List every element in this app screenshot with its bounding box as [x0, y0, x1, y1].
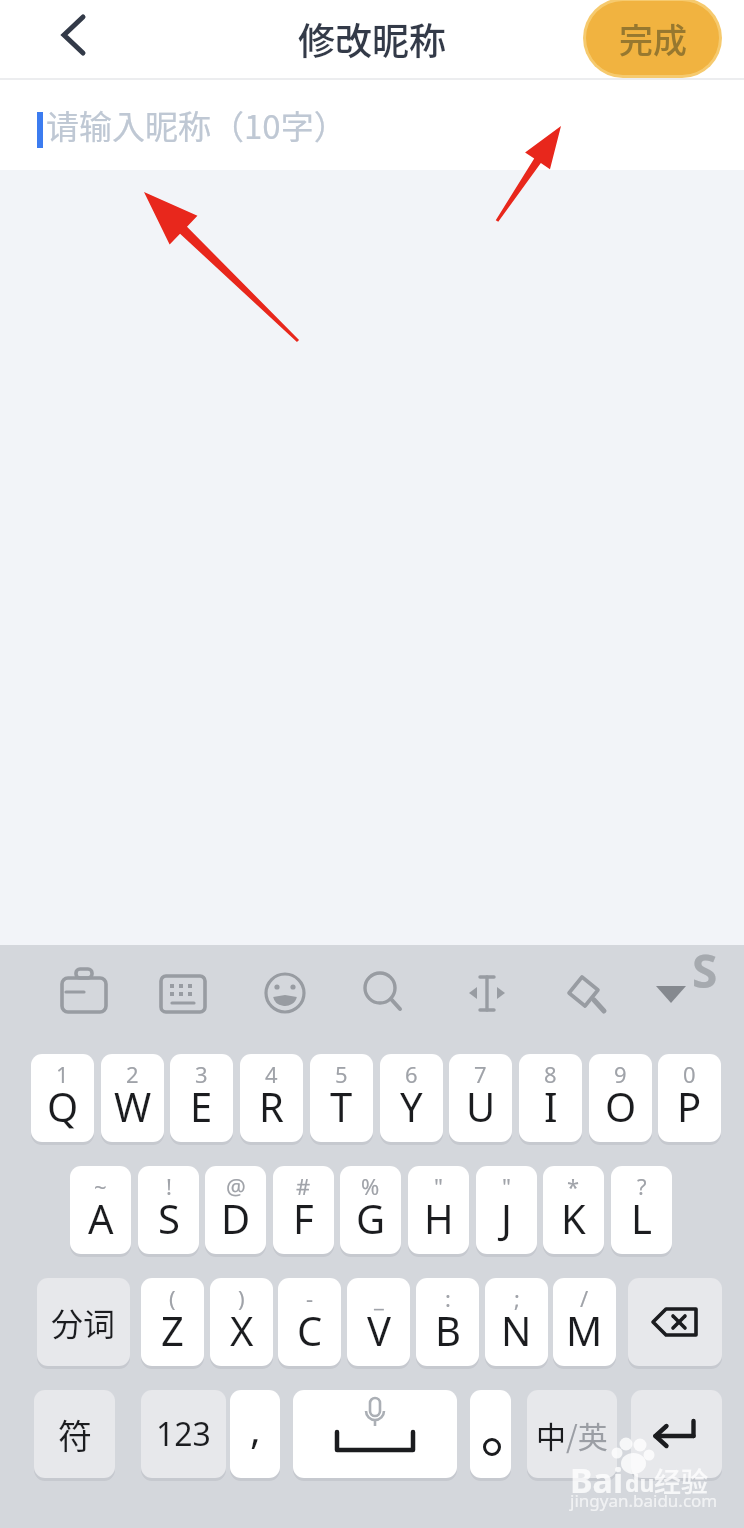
- staticText: du: [625, 1467, 655, 1498]
- staticText: 经验: [654, 1461, 708, 1500]
- staticText: M: [566, 1303, 603, 1357]
- button[interactable]: 0: [658, 1054, 721, 1142]
- staticText: Z: [161, 1303, 184, 1357]
- button[interactable]: [631, 1390, 722, 1478]
- staticText: @: [226, 1171, 246, 1201]
- button[interactable]: 2: [101, 1054, 164, 1142]
- button[interactable]: 符: [34, 1390, 115, 1478]
- staticText: X: [230, 1303, 254, 1357]
- staticText: Q: [47, 1079, 79, 1133]
- button[interactable]: #: [273, 1166, 334, 1254]
- button[interactable]: 完成: [583, 0, 722, 78]
- staticText: #: [296, 1171, 311, 1201]
- button[interactable]: [255, 963, 315, 1023]
- staticText: 4: [265, 1059, 278, 1089]
- staticText: B: [435, 1303, 461, 1357]
- button[interactable]: (: [141, 1278, 204, 1366]
- button[interactable]: [54, 963, 114, 1023]
- staticText: J: [501, 1191, 512, 1245]
- staticText: :: [445, 1283, 451, 1313]
- staticText: ?: [637, 1171, 647, 1201]
- staticText: O: [605, 1079, 637, 1133]
- staticText: G: [356, 1191, 386, 1245]
- button[interactable]: %: [340, 1166, 401, 1254]
- staticText: Bai: [570, 1457, 624, 1503]
- staticText: R: [259, 1079, 284, 1133]
- button[interactable]: :: [416, 1278, 479, 1366]
- button[interactable]: 3: [170, 1054, 233, 1142]
- button[interactable]: ): [210, 1278, 273, 1366]
- staticText: U: [466, 1079, 496, 1133]
- staticText: _: [374, 1283, 384, 1313]
- button[interactable]: 7: [449, 1054, 512, 1142]
- button[interactable]: ;: [485, 1278, 548, 1366]
- staticText: %: [361, 1171, 380, 1201]
- button[interactable]: [40, 5, 104, 71]
- staticText: S: [692, 939, 718, 1002]
- staticText: 完成: [619, 14, 687, 63]
- staticText: N: [501, 1303, 532, 1357]
- button[interactable]: /: [553, 1278, 616, 1366]
- staticText: D: [221, 1191, 251, 1245]
- staticText: 1: [56, 1059, 69, 1089]
- staticText: -: [306, 1283, 314, 1313]
- staticText: 符: [58, 1410, 92, 1459]
- staticText: H: [424, 1191, 454, 1245]
- button[interactable]: ": [408, 1166, 469, 1254]
- button[interactable]: 请输入昵称（10字）: [0, 80, 744, 170]
- button[interactable]: ?: [611, 1166, 672, 1254]
- staticText: jingyan.baidu.com: [570, 1489, 718, 1512]
- button[interactable]: ~: [70, 1166, 131, 1254]
- staticText: I: [544, 1079, 558, 1133]
- button[interactable]: [293, 1390, 457, 1478]
- staticText: K: [561, 1191, 586, 1245]
- button[interactable]: 中: [527, 1390, 617, 1478]
- button[interactable]: [628, 1278, 722, 1366]
- staticText: *: [567, 1171, 580, 1201]
- staticText: E: [190, 1079, 213, 1133]
- staticText: Y: [400, 1079, 423, 1133]
- staticText: 5: [335, 1059, 348, 1089]
- staticText: ;: [514, 1283, 520, 1313]
- staticText: 修改昵称: [298, 12, 446, 66]
- button[interactable]: [556, 963, 616, 1023]
- button[interactable]: ": [476, 1166, 537, 1254]
- staticText: ~: [94, 1171, 107, 1201]
- button[interactable]: [352, 963, 412, 1023]
- button[interactable]: *: [543, 1166, 604, 1254]
- staticText: 请输入昵称（10字）: [46, 101, 347, 149]
- button[interactable]: [641, 963, 701, 1023]
- button[interactable]: 分词: [37, 1278, 130, 1366]
- button[interactable]: !: [138, 1166, 199, 1254]
- staticText: W: [114, 1079, 152, 1133]
- staticText: 9: [614, 1059, 627, 1089]
- staticText: A: [88, 1191, 114, 1245]
- button[interactable]: _: [347, 1278, 410, 1366]
- staticText: ": [502, 1171, 511, 1201]
- button[interactable]: 4: [240, 1054, 303, 1142]
- button[interactable]: [153, 963, 213, 1023]
- staticText: /: [580, 1283, 589, 1313]
- staticText: P: [677, 1079, 702, 1133]
- button[interactable]: [457, 963, 517, 1023]
- staticText: V: [367, 1303, 391, 1357]
- button[interactable]: 123: [141, 1390, 226, 1478]
- button[interactable]: 6: [380, 1054, 443, 1142]
- staticText: ": [434, 1171, 443, 1201]
- staticText: !: [166, 1171, 172, 1201]
- button[interactable]: 8: [519, 1054, 582, 1142]
- staticText: L: [631, 1191, 652, 1245]
- staticText: 8: [544, 1059, 557, 1089]
- button[interactable]: ,: [230, 1390, 280, 1478]
- button[interactable]: @: [205, 1166, 266, 1254]
- staticText: /英: [566, 1413, 608, 1456]
- staticText: 123: [156, 1412, 211, 1456]
- button[interactable]: 9: [589, 1054, 652, 1142]
- button[interactable]: [470, 1390, 511, 1478]
- button[interactable]: -: [278, 1278, 341, 1366]
- staticText: C: [297, 1303, 323, 1357]
- staticText: 0: [683, 1059, 696, 1089]
- button[interactable]: 5: [310, 1054, 373, 1142]
- staticText: S: [158, 1191, 180, 1245]
- button[interactable]: 1: [31, 1054, 94, 1142]
